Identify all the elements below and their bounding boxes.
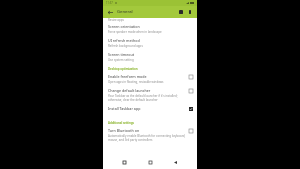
staticText: Open apps in floating, resizable windows xyxy=(108,80,164,84)
button[interactable]: Screen timeout xyxy=(103,50,197,64)
staticText: Screen timeout xyxy=(108,52,135,57)
staticText: Desktop optimization xyxy=(108,67,138,71)
staticText: UI refresh method xyxy=(108,38,140,43)
button[interactable]: Turn Bluetooth on xyxy=(103,126,197,144)
staticText: 11:57 xyxy=(106,1,113,5)
other: Change default launcher xyxy=(189,89,193,93)
staticText: Use system setting xyxy=(108,58,134,62)
staticText: Install Taskbar app xyxy=(108,106,141,111)
staticText: General xyxy=(117,9,133,15)
button[interactable]: Change default launcher xyxy=(103,86,197,104)
staticText: Automatically enable Bluetooth for conne… xyxy=(108,134,186,142)
button[interactable]: Help xyxy=(178,9,184,15)
staticText: Change default launcher xyxy=(108,88,151,93)
staticText: Screen orientation xyxy=(108,24,140,29)
button[interactable]: Back xyxy=(107,9,114,16)
staticText: Refresh background apps xyxy=(108,44,143,48)
button[interactable]: UI refresh method xyxy=(103,36,197,50)
staticText: Additional settings xyxy=(108,121,134,125)
button[interactable]: Screen orientation xyxy=(103,22,197,36)
staticText: Turn Bluetooth on xyxy=(108,128,140,133)
staticText: Force speaker mode when in landscape xyxy=(108,30,162,34)
button[interactable]: More options xyxy=(187,9,193,15)
other: Enable freeform mode xyxy=(189,75,193,79)
staticText: Your Taskbar as the default launcher if … xyxy=(108,94,186,102)
other: Turn Bluetooth on xyxy=(189,129,193,133)
button[interactable]: Back xyxy=(171,158,180,167)
button[interactable]: Enable freeform mode xyxy=(103,72,197,86)
staticText: Resize apps xyxy=(108,18,124,22)
button[interactable]: Recents xyxy=(120,158,129,167)
button[interactable]: Install Taskbar app xyxy=(103,104,197,118)
other: Install Taskbar app xyxy=(189,107,193,111)
button[interactable]: Home xyxy=(146,158,155,167)
button[interactable]: Resize apps xyxy=(103,18,197,22)
staticText: Enable freeform mode xyxy=(108,74,147,79)
